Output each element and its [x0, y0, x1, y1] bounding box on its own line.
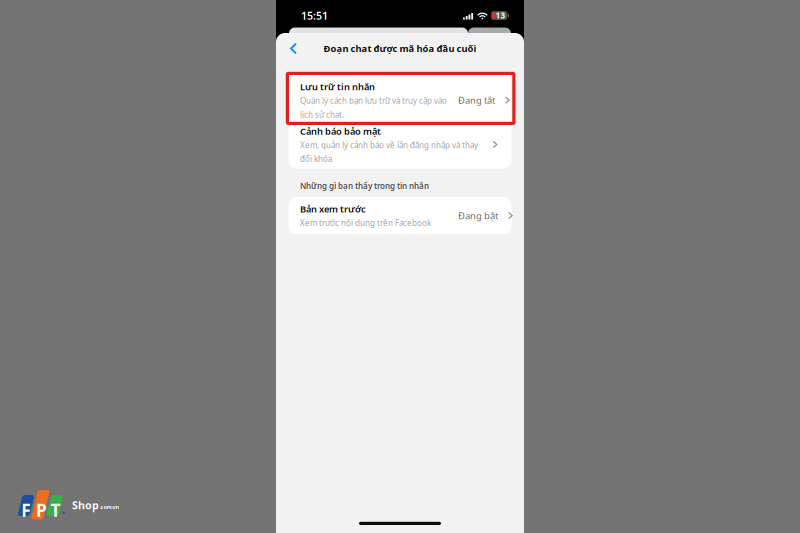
staticText: Những gì bạn thấy trong tin nhắn	[300, 181, 429, 191]
staticText: Đoạn chat được mã hóa đầu cuối	[323, 42, 476, 55]
staticText: Shop	[72, 498, 99, 512]
staticText: 13	[496, 10, 506, 21]
staticText: Đang tắt	[458, 94, 495, 106]
staticText: F	[21, 499, 31, 522]
staticText: Bản xem trước	[300, 203, 366, 215]
staticText: Lưu trữ tin nhắn	[300, 80, 375, 93]
button[interactable]: Lưu trữ tin nhắn	[288, 72, 511, 122]
staticText: T	[50, 499, 60, 522]
staticText: .com.vn	[99, 503, 118, 511]
staticText: Xem, quản lý cảnh báo về lần đăng nhập v…	[300, 140, 478, 164]
button[interactable]: Cảnh báo bảo mật	[288, 122, 511, 169]
button[interactable]: Bản xem trước	[288, 197, 511, 234]
staticText: 15:51	[301, 8, 328, 23]
button[interactable]: Back	[276, 37, 309, 60]
staticText: Xem trước nội dung trên Facebook	[300, 218, 431, 228]
staticText: P	[36, 499, 47, 522]
staticText: Cảnh báo bảo mật	[300, 125, 381, 137]
staticText: Đang bật	[458, 209, 498, 222]
staticText: Quản lý cách bạn lưu trữ và truy cập vào…	[300, 95, 447, 120]
